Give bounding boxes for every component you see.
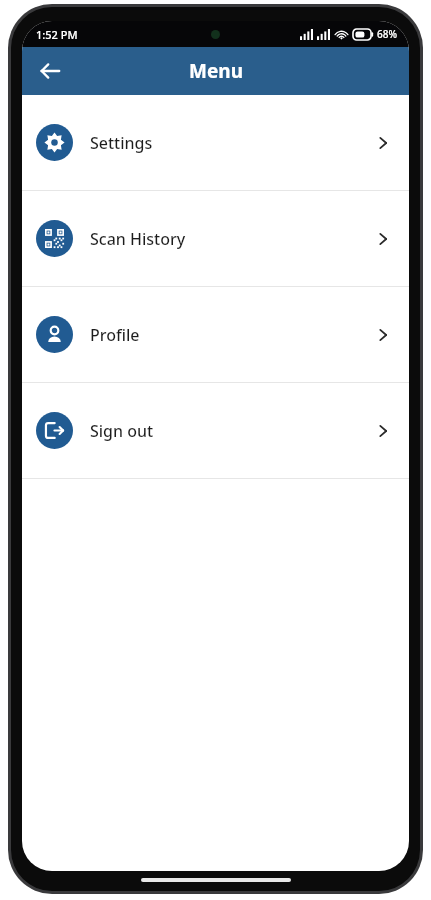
staticText: Profile xyxy=(90,324,375,346)
button[interactable]: Back xyxy=(28,49,72,93)
button[interactable]: Scan History xyxy=(22,191,409,286)
button[interactable]: Settings xyxy=(22,95,409,190)
staticText: 1:52 PM xyxy=(36,27,78,42)
staticText: Menu xyxy=(189,58,243,84)
staticText: 68% xyxy=(377,27,397,41)
staticText: Scan History xyxy=(90,228,375,250)
staticText: Settings xyxy=(90,132,375,154)
staticText: Sign out xyxy=(90,420,375,442)
button[interactable]: Profile xyxy=(22,287,409,382)
button[interactable]: Sign out xyxy=(22,383,409,478)
